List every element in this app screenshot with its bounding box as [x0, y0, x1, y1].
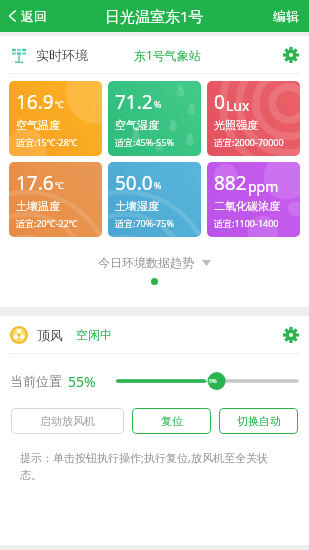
staticText: 空闲中 [76, 327, 112, 342]
staticText: 55% [68, 372, 96, 391]
staticText: 50.0 [115, 170, 153, 196]
staticText: 今日环境数据趋势 [98, 255, 194, 270]
button[interactable]: 顶风设置 [273, 321, 309, 349]
staticText: 复位 [161, 414, 183, 428]
button[interactable]: 0 [207, 81, 300, 156]
button[interactable]: 东1号气象站 [130, 43, 205, 67]
staticText: 17.6 [16, 170, 54, 196]
staticText: 16.9 [16, 89, 54, 115]
staticText: 0 [214, 89, 225, 115]
staticText: 东1号气象站 [134, 47, 201, 63]
staticText: 土壤湿度 [115, 199, 159, 213]
button[interactable]: 位置滑块 [116, 368, 299, 394]
button[interactable]: 复位 [132, 408, 211, 434]
staticText: 55% [205, 377, 217, 385]
staticText: ppm [248, 177, 279, 196]
staticText: 实时环境 [36, 47, 88, 63]
staticText: 空气湿度 [115, 118, 159, 132]
staticText: 适宜:2000-70000 [214, 136, 284, 148]
staticText: 土壤温度 [16, 199, 60, 213]
staticText: 切换自动 [237, 414, 281, 428]
staticText: 日光温室东1号 [105, 6, 204, 26]
staticText: 882 [214, 170, 247, 196]
staticText: 空气温度 [16, 118, 60, 132]
button[interactable]: 16.9 [9, 81, 102, 156]
staticText: 当前位置 [10, 373, 62, 389]
button[interactable]: 返回 [0, 4, 57, 28]
staticText: % [154, 98, 162, 110]
staticText: 编辑 [273, 8, 299, 24]
staticText: 适宜:1100-1400 [214, 217, 279, 229]
staticText: 顶风 [37, 327, 63, 343]
staticText: 适宜:70%-75% [115, 217, 174, 229]
staticText: ℃ [55, 179, 64, 191]
button[interactable]: 17.6 [9, 162, 102, 237]
staticText: 返回 [21, 8, 47, 24]
button[interactable]: 71.2 [108, 81, 201, 156]
button[interactable]: 切换自动 [219, 408, 298, 434]
button[interactable]: 设置 [273, 41, 309, 69]
button[interactable]: 50.0 [108, 162, 201, 237]
staticText: 71.2 [115, 89, 153, 115]
button[interactable]: 882 [207, 162, 300, 237]
button[interactable]: 启动放风机 [11, 408, 124, 434]
staticText: % [154, 179, 162, 191]
button[interactable]: 今日环境数据趋势 [0, 255, 309, 270]
button[interactable]: 编辑 [263, 3, 309, 29]
staticText: ℃ [55, 98, 64, 110]
staticText: 适宜:45%-55% [115, 136, 174, 148]
staticText: 启动放风机 [40, 414, 95, 428]
staticText: 提示：单击按钮执行操作;执行复位,放风机至全关状 态。 [20, 450, 268, 482]
staticText: 二氧化碳浓度 [214, 199, 280, 213]
staticText: 适宜:15℃-28℃ [16, 136, 78, 148]
staticText: 适宜:20℃-22℃ [16, 217, 78, 229]
staticText: 光照强度 [214, 118, 258, 132]
staticText: Lux [226, 96, 250, 115]
